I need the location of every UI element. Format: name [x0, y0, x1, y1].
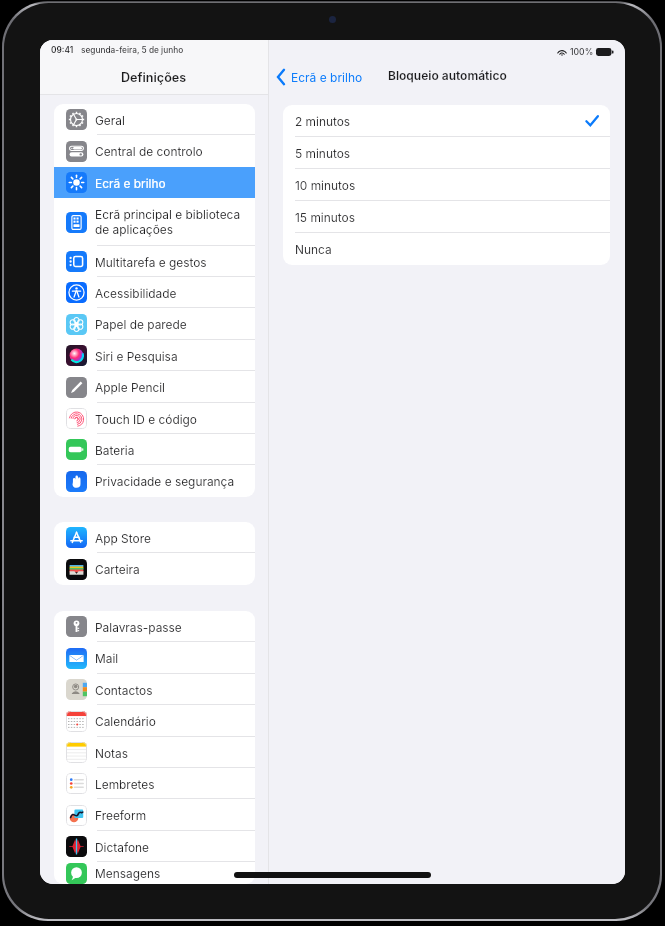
staticText: Ecrã e brilho: [291, 70, 363, 85]
button[interactable]: Lembretes: [54, 768, 255, 799]
staticText: Palavras-passe: [95, 620, 182, 634]
button[interactable]: Notas: [54, 737, 255, 768]
staticText: Carteira: [95, 562, 140, 576]
button[interactable]: Carteira: [54, 553, 255, 585]
staticText: Touch ID e código: [95, 412, 197, 426]
button[interactable]: Geral: [54, 104, 255, 135]
button[interactable]: 5 minutos: [283, 137, 610, 169]
staticText: Bateria: [95, 443, 135, 457]
button[interactable]: Contactos: [54, 674, 255, 705]
staticText: Mail: [95, 651, 119, 665]
button[interactable]: App Store: [54, 522, 255, 553]
button[interactable]: Acessibilidade: [54, 277, 255, 308]
button[interactable]: Touch ID e código: [54, 403, 255, 434]
staticText: Mensagens: [95, 866, 161, 880]
staticText: 15 minutos: [295, 210, 355, 224]
button[interactable]: Palavras-passe: [54, 611, 255, 642]
staticText: Lembretes: [95, 777, 155, 791]
staticText: App Store: [95, 531, 151, 545]
button[interactable]: 15 minutos: [283, 201, 610, 233]
staticText: Siri e Pesquisa: [95, 349, 178, 363]
button[interactable]: Siri e Pesquisa: [54, 340, 255, 371]
staticText: Dictafone: [95, 840, 150, 854]
staticText: Freeform: [95, 808, 147, 822]
button[interactable]: Central de controlo: [54, 135, 255, 167]
staticText: Multitarefa e gestos: [95, 255, 207, 269]
staticText: Geral: [95, 113, 125, 127]
staticText: Central de controlo: [95, 144, 203, 158]
staticText: Calendário: [95, 714, 156, 728]
button[interactable]: Voltar a Ecrã e brilho: [269, 64, 369, 90]
button[interactable]: Ecrã e brilho: [54, 167, 255, 198]
staticText: Acessibilidade: [95, 286, 177, 300]
button[interactable]: Ecrã principal e biblioteca de aplicaçõe…: [54, 198, 255, 246]
staticText: Bloqueio automático: [388, 68, 507, 83]
staticText: segunda-feira, 5 de junho: [81, 45, 184, 55]
staticText: Definições: [121, 70, 187, 85]
button[interactable]: 2 minutos: [283, 105, 610, 137]
button[interactable]: Multitarefa e gestos: [54, 246, 255, 277]
button[interactable]: Mensagens: [54, 862, 255, 884]
button[interactable]: Bateria: [54, 434, 255, 465]
staticText: Papel de parede: [95, 317, 187, 331]
staticText: 09:41: [51, 45, 74, 55]
staticText: 5 minutos: [295, 146, 351, 160]
staticText: Ecrã principal e biblioteca de aplicaçõe…: [95, 207, 241, 237]
button[interactable]: Freeform: [54, 799, 255, 831]
button[interactable]: Papel de parede: [54, 308, 255, 340]
staticText: 100%: [570, 47, 594, 57]
button[interactable]: Apple Pencil: [54, 371, 255, 403]
staticText: Apple Pencil: [95, 380, 165, 394]
button[interactable]: Mail: [54, 642, 255, 674]
button[interactable]: Dictafone: [54, 831, 255, 862]
button[interactable]: Calendário: [54, 705, 255, 737]
staticText: Contactos: [95, 683, 153, 697]
staticText: Privacidade e segurança: [95, 474, 235, 488]
button[interactable]: Privacidade e segurança: [54, 465, 255, 497]
staticText: 10 minutos: [295, 178, 356, 192]
button[interactable]: 10 minutos: [283, 169, 610, 201]
staticText: 2 minutos: [295, 114, 351, 128]
staticText: Nunca: [295, 242, 332, 256]
staticText: Notas: [95, 746, 128, 760]
staticText: Ecrã e brilho: [95, 176, 166, 190]
button[interactable]: Nunca: [283, 233, 610, 265]
